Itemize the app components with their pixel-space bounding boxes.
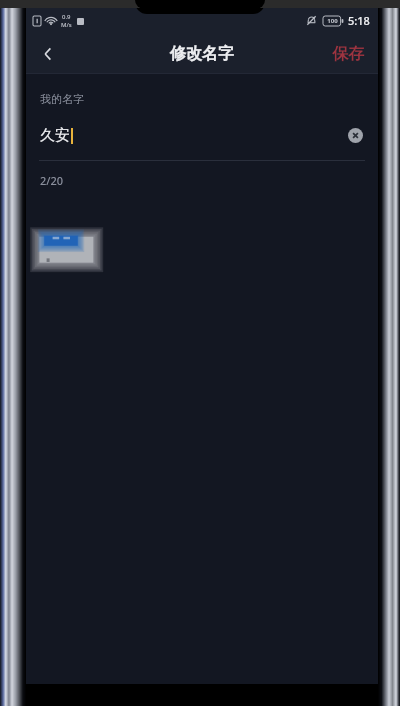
button[interactable]: Image preview	[37, 231, 97, 267]
staticText: 修改名字	[170, 44, 234, 64]
button[interactable]: 久安	[26, 122, 378, 148]
staticText: 2/20	[40, 173, 64, 188]
staticText: 100	[327, 17, 338, 25]
staticText: 0.9	[62, 13, 71, 21]
button[interactable]: Clear text	[344, 124, 366, 146]
button[interactable]: 保存	[318, 33, 378, 74]
button[interactable]: Back	[26, 33, 70, 74]
staticText: M/s	[61, 21, 72, 29]
staticText: 久安	[40, 126, 70, 145]
staticText: 我的名字	[40, 92, 84, 106]
staticText: 保存	[332, 44, 364, 64]
staticText: 5:18	[348, 13, 370, 28]
